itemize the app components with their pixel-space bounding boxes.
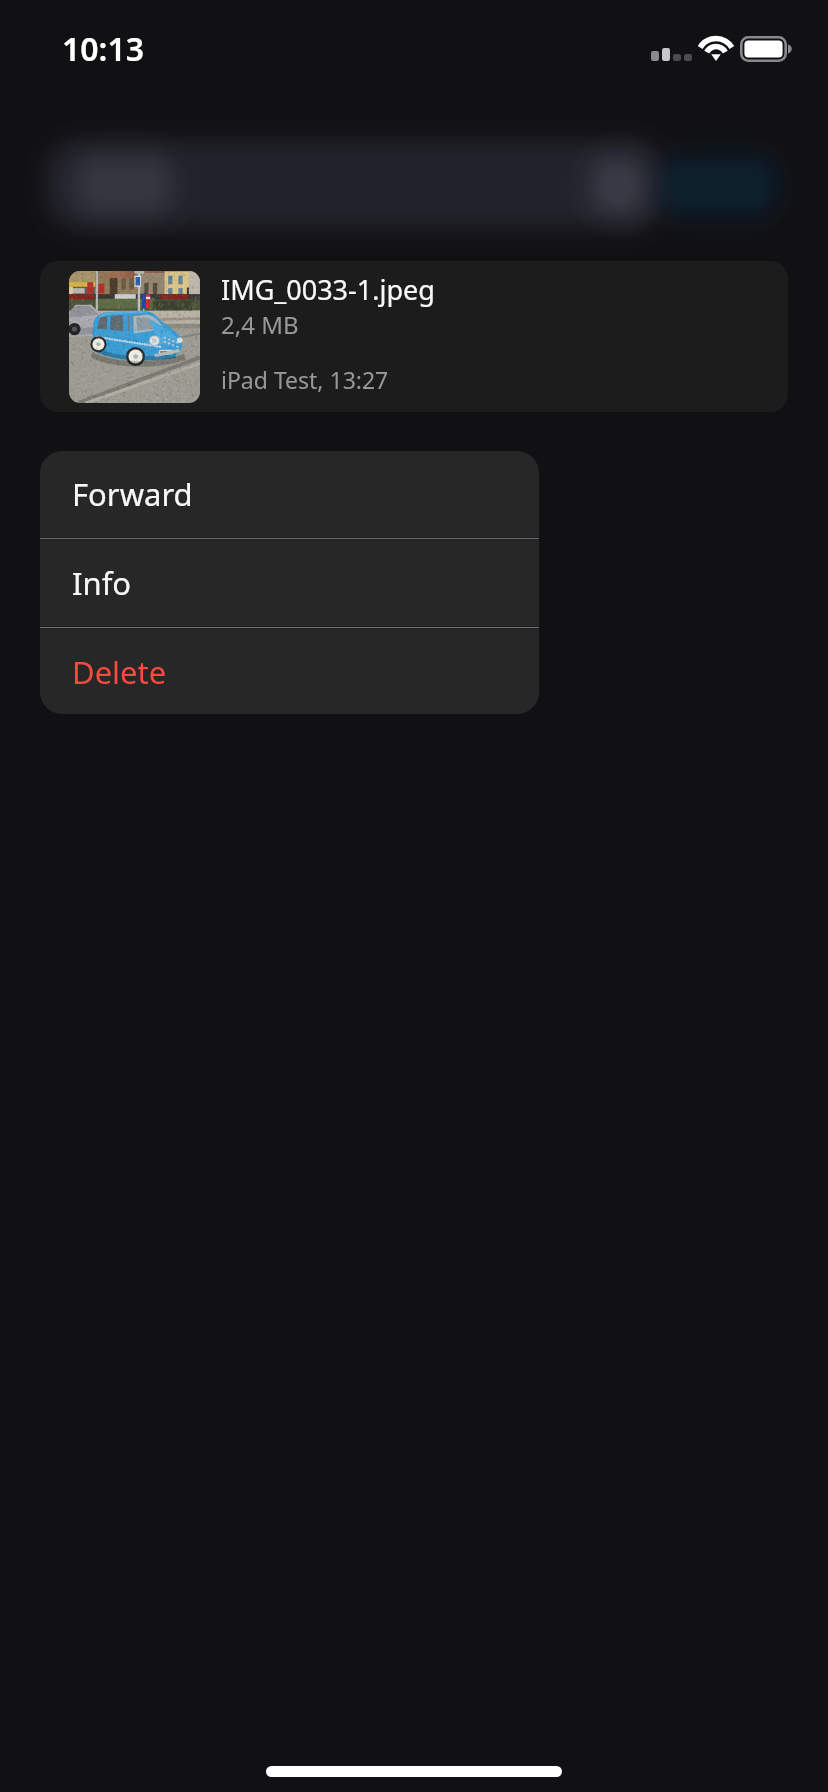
- button[interactable]: Info: [40, 540, 539, 626]
- button[interactable]: Cancel: [664, 159, 774, 211]
- staticText: Info: [72, 562, 132, 604]
- button[interactable]: Forward: [40, 451, 539, 537]
- button[interactable]: IMG_0033-1.jpeg: [40, 261, 788, 412]
- staticText: iPad Test, 13:27: [221, 364, 389, 395]
- staticText: 10:13: [62, 27, 145, 71]
- staticText: IMG_0033-1.jpeg: [221, 271, 435, 308]
- staticText: Delete: [72, 651, 167, 693]
- button[interactable]: Search: [52, 155, 648, 215]
- button[interactable]: Clear search: [600, 161, 646, 209]
- staticText: Forward: [72, 473, 193, 515]
- button[interactable]: Delete: [40, 629, 539, 714]
- staticText: 2,4 MB: [221, 308, 299, 341]
